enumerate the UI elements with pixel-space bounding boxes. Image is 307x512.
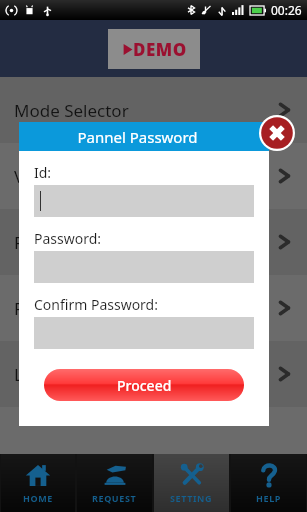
button[interactable]: HELP <box>231 454 306 512</box>
staticText: Confirm Password: <box>34 295 158 314</box>
button[interactable]: REQUEST <box>77 454 152 512</box>
staticText: SETTING <box>170 492 213 504</box>
staticText: Proceed <box>117 376 172 395</box>
button[interactable]: Reports <box>0 275 307 341</box>
button[interactable]: Mode Selector <box>0 77 307 143</box>
staticText: Id: <box>34 163 52 182</box>
button[interactable]: Logs <box>0 341 307 407</box>
button[interactable]: Close <box>259 115 295 151</box>
staticText: HOME <box>23 492 53 504</box>
staticText: Password: <box>34 229 102 248</box>
staticText: View Status <box>14 165 106 188</box>
button[interactable] <box>34 185 254 217</box>
staticText: DEMO <box>133 38 187 61</box>
staticText: HELP <box>256 492 281 504</box>
staticText: Panel Setting <box>14 231 120 254</box>
button[interactable]: Panel Setting <box>0 209 307 275</box>
staticText: REQUEST <box>92 492 137 504</box>
button[interactable]: SETTING <box>154 454 229 512</box>
staticText: Pannel Password <box>77 127 198 147</box>
button[interactable]: Proceed <box>44 369 244 401</box>
staticText: Mode Selector <box>14 99 129 122</box>
staticText: Logs <box>14 363 52 386</box>
staticText: 00:26 <box>271 2 302 18</box>
button[interactable]: View Status <box>0 143 307 209</box>
staticText: Reports <box>14 297 77 320</box>
button[interactable]: HOME <box>1 454 75 512</box>
